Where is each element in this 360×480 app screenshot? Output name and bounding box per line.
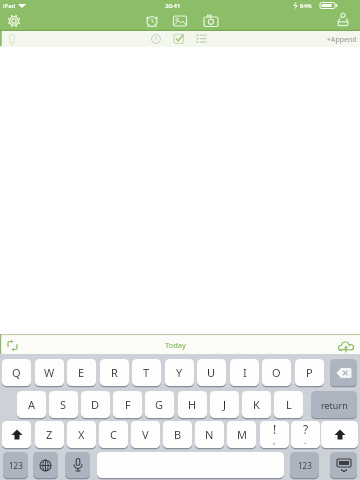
staticText: H	[188, 397, 197, 412]
staticText: X	[78, 427, 85, 442]
button[interactable]: M	[227, 421, 256, 448]
staticText: ,	[273, 434, 276, 446]
staticText: !	[273, 421, 277, 437]
staticText: 20:41	[165, 2, 181, 10]
button[interactable]: ?	[291, 421, 320, 448]
staticText: B	[174, 427, 182, 442]
button[interactable]: J	[210, 391, 239, 418]
button[interactable]: Z	[35, 421, 64, 448]
button[interactable]: F	[113, 391, 142, 418]
button[interactable]: 123	[3, 452, 28, 478]
staticText: P	[306, 365, 313, 380]
button[interactable]	[6, 13, 22, 29]
staticText: O	[272, 365, 281, 380]
staticText: M	[237, 427, 247, 442]
button[interactable]: 123	[290, 452, 319, 478]
staticText: J	[223, 397, 227, 412]
button[interactable]	[203, 13, 219, 29]
button[interactable]: K	[242, 391, 271, 418]
button[interactable]: Today	[165, 340, 186, 350]
button[interactable]: L	[274, 391, 303, 418]
button[interactable]: Y	[165, 359, 194, 386]
staticText: S	[60, 397, 67, 412]
staticText: T	[143, 365, 150, 380]
staticText: G	[155, 397, 164, 412]
button[interactable]	[335, 12, 351, 28]
button[interactable]	[338, 340, 354, 353]
button[interactable]: B	[163, 421, 192, 448]
button[interactable]: A	[17, 391, 46, 418]
button[interactable]: H	[178, 391, 207, 418]
button[interactable]	[65, 452, 90, 478]
staticText: L	[286, 397, 292, 412]
button[interactable]: +Append	[327, 35, 357, 45]
staticText: F	[125, 397, 131, 412]
button[interactable]: S	[49, 391, 78, 418]
staticText: A	[28, 397, 36, 412]
button[interactable]: D	[81, 391, 110, 418]
staticText: V	[142, 427, 149, 442]
staticText: I	[243, 365, 247, 380]
staticText: U	[207, 365, 216, 380]
staticText: iPad	[3, 2, 16, 10]
button[interactable]: return	[311, 391, 357, 418]
staticText: 123	[298, 460, 312, 471]
button[interactable]: P	[295, 359, 324, 386]
button[interactable]: V	[131, 421, 160, 448]
button[interactable]: G	[145, 391, 174, 418]
button[interactable]	[97, 452, 284, 478]
button[interactable]	[321, 421, 358, 448]
staticText: W	[44, 365, 55, 380]
button[interactable]: U	[197, 359, 226, 386]
staticText: Z	[46, 427, 53, 442]
button[interactable]	[144, 13, 160, 29]
staticText: Y	[176, 365, 183, 380]
button[interactable]	[2, 421, 31, 448]
button[interactable]	[330, 452, 357, 478]
staticText: R	[111, 365, 118, 380]
button[interactable]: Q	[2, 359, 31, 386]
staticText: return	[321, 399, 348, 411]
button[interactable]: E	[67, 359, 96, 386]
button[interactable]	[33, 452, 58, 478]
button[interactable]: T	[132, 359, 161, 386]
staticText: ?	[303, 421, 309, 437]
staticText: N	[205, 427, 214, 442]
staticText: D	[91, 397, 100, 412]
staticText: .	[304, 434, 307, 446]
button[interactable]	[330, 359, 357, 386]
button[interactable]	[7, 340, 19, 352]
staticText: E	[78, 365, 85, 380]
button[interactable]: X	[67, 421, 96, 448]
staticText: 123	[9, 460, 23, 471]
button[interactable]: I	[230, 359, 259, 386]
staticText: C	[110, 427, 117, 442]
button[interactable]: W	[35, 359, 64, 386]
button[interactable]: N	[195, 421, 224, 448]
staticText: Q	[12, 365, 21, 380]
button[interactable]: R	[100, 359, 129, 386]
button[interactable]: C	[99, 421, 128, 448]
button[interactable]: O	[262, 359, 291, 386]
staticText: K	[253, 397, 260, 412]
button[interactable]: !	[260, 421, 289, 448]
staticText: 84%	[300, 2, 312, 10]
button[interactable]	[172, 13, 188, 29]
